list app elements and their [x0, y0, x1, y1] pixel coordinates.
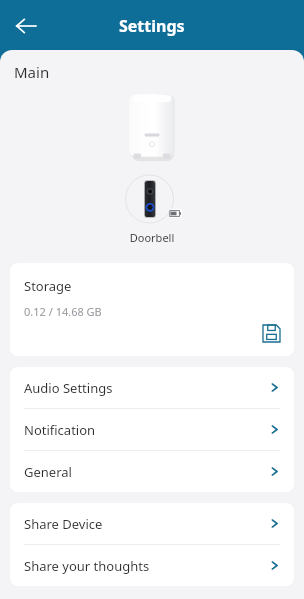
staticText: Audio Settings — [24, 379, 269, 397]
staticText: Notification — [24, 421, 269, 439]
staticText: Share Device — [24, 515, 269, 533]
staticText: Main — [14, 62, 50, 82]
button[interactable]: Back — [6, 6, 46, 46]
staticText: Share your thoughts — [24, 557, 269, 575]
staticText: 0.12 / 14.68 GB — [24, 304, 102, 319]
staticText: General — [24, 463, 269, 481]
button[interactable]: Share Device — [10, 503, 294, 544]
staticText: Storage — [24, 277, 72, 295]
button[interactable]: Storage — [10, 263, 294, 356]
button[interactable]: Audio Settings — [10, 367, 294, 408]
staticText: Settings — [119, 15, 185, 37]
button[interactable]: Share your thoughts — [10, 545, 294, 586]
staticText: Doorbell — [0, 230, 304, 245]
button[interactable]: Notification — [10, 409, 294, 450]
button[interactable]: General — [10, 451, 294, 492]
